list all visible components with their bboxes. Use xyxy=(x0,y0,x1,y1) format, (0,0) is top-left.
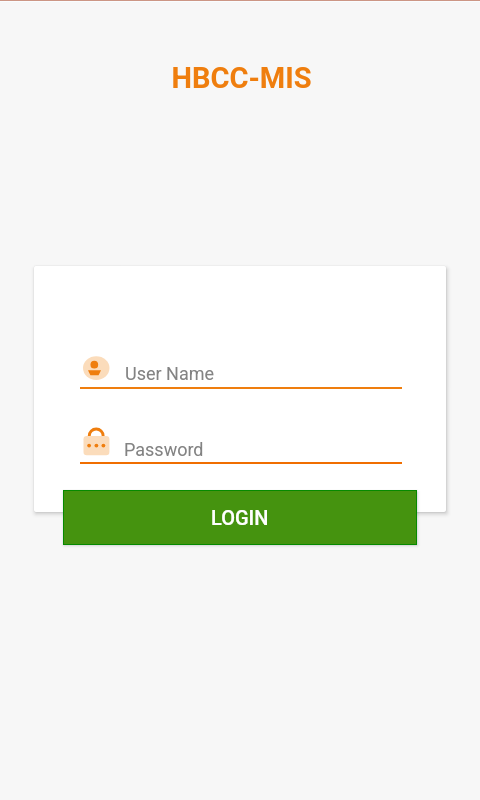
other: Password xyxy=(80,425,112,457)
button[interactable] xyxy=(80,352,402,390)
button[interactable] xyxy=(80,425,402,464)
staticText: Password xyxy=(124,439,204,460)
staticText: User Name xyxy=(125,363,215,384)
staticText: LOGIN xyxy=(211,506,269,529)
other: User name xyxy=(80,354,112,386)
button[interactable]: LOGIN xyxy=(64,491,416,544)
staticText: HBCC-MIS xyxy=(171,61,312,95)
